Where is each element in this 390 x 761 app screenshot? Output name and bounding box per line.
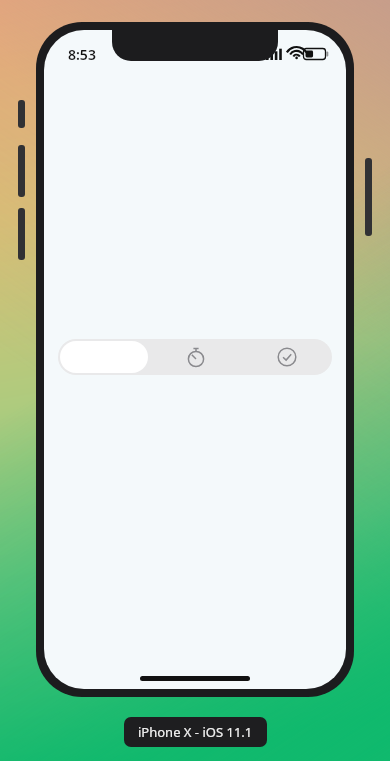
button[interactable]: First tab, selected (60, 341, 148, 373)
button[interactable]: Completed (241, 339, 332, 375)
button[interactable]: Timer (150, 339, 241, 375)
staticText: 8:53 (68, 45, 96, 64)
staticText: iPhone X - iOS 11.1 (138, 723, 253, 741)
